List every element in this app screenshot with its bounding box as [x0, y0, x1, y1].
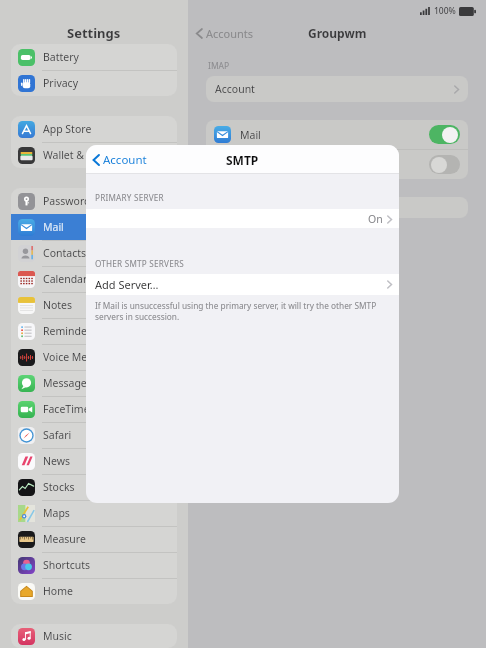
staticText: Mail	[43, 220, 64, 234]
button[interactable]: News	[11, 448, 177, 474]
staticText: Privacy	[43, 76, 79, 90]
button[interactable]: Music	[11, 624, 177, 648]
button[interactable]: Wallet &	[11, 142, 177, 168]
button[interactable]: Reminders	[11, 318, 177, 344]
staticText: Groupwm	[308, 25, 367, 41]
staticText: Home	[43, 584, 73, 598]
staticText: OTHER SMTP SERVERS	[95, 258, 184, 269]
button[interactable]: Account	[206, 76, 468, 102]
staticText: App Store	[43, 122, 92, 136]
staticText: Add Server…	[95, 277, 159, 292]
button[interactable]: Home	[11, 578, 177, 604]
staticText: Battery	[43, 50, 79, 64]
staticText: Maps	[43, 506, 70, 520]
staticText: Contacts	[43, 246, 87, 260]
staticText: Settings	[67, 24, 121, 42]
button[interactable]: Account	[93, 152, 147, 168]
staticText: 100%	[434, 5, 456, 17]
button[interactable]: FaceTime	[11, 396, 177, 422]
button[interactable]: Notes	[206, 150, 468, 179]
button[interactable]: Privacy	[11, 70, 177, 96]
staticText: Stocks	[43, 480, 75, 494]
button[interactable]: Stocks	[11, 474, 177, 500]
button[interactable]: Messages	[11, 370, 177, 396]
staticText: Shortcuts	[43, 558, 91, 572]
button[interactable]: Mail	[11, 214, 177, 240]
staticText: Wallet &	[43, 148, 87, 162]
staticText: If Mail is unsuccessful using the primar…	[95, 300, 390, 322]
staticText: Measure	[43, 532, 86, 546]
staticText: News	[43, 454, 70, 468]
button[interactable]: Notes	[11, 292, 177, 318]
button[interactable]: Contacts	[11, 240, 177, 266]
staticText: PRIMARY SERVER	[95, 192, 164, 203]
staticText: Notes	[43, 298, 73, 312]
staticText: Voice Memos	[43, 350, 109, 364]
button[interactable]: On	[86, 209, 399, 228]
staticText: Messages	[43, 376, 92, 390]
staticText: Passwords	[43, 194, 96, 208]
button[interactable]: Safari	[11, 422, 177, 448]
staticText: SMTP	[226, 152, 259, 168]
staticText: FaceTime	[43, 402, 90, 416]
button[interactable]: Mail	[206, 120, 468, 149]
button[interactable]: Battery	[11, 44, 177, 70]
staticText: Mail	[240, 128, 261, 142]
staticText: Safari	[43, 428, 72, 442]
button[interactable]	[206, 197, 468, 218]
staticText: Reminders	[43, 324, 97, 338]
staticText: IMAP	[208, 60, 230, 72]
button[interactable]: Notes toggle	[429, 155, 460, 174]
button[interactable]: Shortcuts	[11, 552, 177, 578]
staticText: Calendar	[43, 272, 88, 286]
button[interactable]: Voice Memos	[11, 344, 177, 370]
staticText: Music	[43, 629, 72, 643]
staticText: Account	[215, 82, 255, 96]
staticText: Account	[103, 152, 147, 168]
button[interactable]: Add Server…	[86, 274, 399, 295]
button[interactable]: Accounts	[196, 26, 254, 41]
staticText: Notes	[240, 158, 270, 172]
staticText: On	[368, 212, 383, 226]
button[interactable]: Passwords	[11, 188, 177, 214]
staticText: Accounts	[206, 26, 254, 41]
button[interactable]: Calendar	[11, 266, 177, 292]
button[interactable]: Measure	[11, 526, 177, 552]
button[interactable]: Mail toggle	[429, 125, 460, 144]
button[interactable]: Maps	[11, 500, 177, 526]
button[interactable]: App Store	[11, 116, 177, 142]
